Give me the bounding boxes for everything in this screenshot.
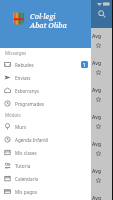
staticText: Avg (92, 87, 102, 94)
staticText: Murs (15, 124, 27, 130)
staticText: Agenda Infantil (15, 137, 49, 143)
button[interactable]: Mis clases (0, 146, 91, 159)
staticText: Avg (92, 195, 102, 200)
button[interactable]: Agenda Infantil (0, 133, 91, 146)
button[interactable]: Avg (0, 82, 113, 109)
staticText: Mis clases (15, 150, 37, 156)
staticText: Programades (15, 101, 45, 107)
staticText: Enviats (15, 75, 31, 81)
staticText: Avg (92, 141, 102, 148)
button[interactable]: Murs (0, 120, 91, 133)
staticText: Col·legi Abat Oliba (30, 11, 67, 30)
button[interactable]: Mis pagos (0, 185, 91, 198)
button[interactable]: Search (95, 7, 109, 21)
button[interactable]: Avg (0, 55, 113, 82)
staticText: Tutoria (15, 163, 31, 169)
staticText: Rebudes (15, 62, 34, 68)
staticText: Calendario (15, 176, 39, 182)
button[interactable]: Programades (0, 97, 91, 110)
staticText: Missatges (5, 50, 27, 56)
button[interactable]: Avg (0, 163, 113, 190)
staticText: Avg (92, 33, 102, 40)
staticText: Mòduls (5, 112, 21, 118)
button[interactable]: Avg (0, 28, 113, 55)
button[interactable]: Rebudes (0, 58, 91, 71)
button[interactable]: Enviats (0, 71, 91, 84)
staticText: Avg (92, 168, 102, 175)
staticText: Mis pagos (15, 189, 37, 195)
button[interactable]: Esborranys (0, 84, 91, 97)
button[interactable]: Avg (0, 136, 113, 163)
staticText: Avg (92, 114, 102, 121)
button[interactable]: Avg (0, 190, 113, 200)
staticText: Esborranys (15, 88, 40, 94)
button[interactable]: Tutoria (0, 159, 91, 172)
staticText: 1 (83, 62, 86, 68)
button[interactable]: Calendario (0, 172, 91, 185)
staticText: Avg (92, 60, 102, 67)
button[interactable]: Avg (0, 109, 113, 136)
